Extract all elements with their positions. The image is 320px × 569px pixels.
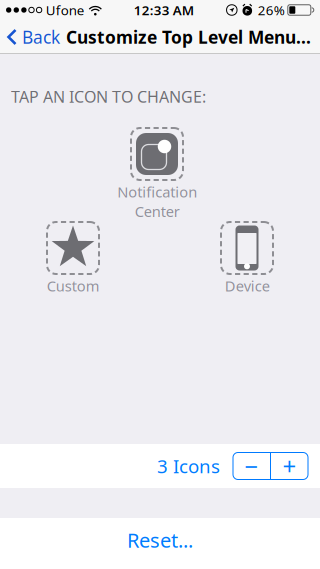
staticText: + <box>282 450 296 482</box>
staticText: Custom <box>46 276 99 295</box>
staticText: − <box>244 450 258 482</box>
button[interactable]: Decrease <box>233 452 270 479</box>
button[interactable]: Device <box>201 221 293 295</box>
staticText: 12:33 AM <box>134 1 194 19</box>
button[interactable]: Custom <box>27 221 119 295</box>
button[interactable]: Notification Center <box>111 127 203 221</box>
staticText: Back <box>22 25 60 48</box>
staticText: Reset... <box>127 527 193 553</box>
button[interactable]: Increase <box>271 452 308 479</box>
staticText: 26% <box>258 1 285 19</box>
staticText: Device <box>224 276 269 295</box>
button[interactable]: Reset... <box>0 518 320 562</box>
staticText: Notification Center <box>117 182 197 221</box>
staticText: Ufone <box>46 1 85 19</box>
staticText: 3 Icons <box>157 454 220 478</box>
staticText: Customize Top Level Menu... <box>66 25 311 48</box>
button[interactable]: Back <box>0 19 60 54</box>
staticText: TAP AN ICON TO CHANGE: <box>11 86 206 107</box>
